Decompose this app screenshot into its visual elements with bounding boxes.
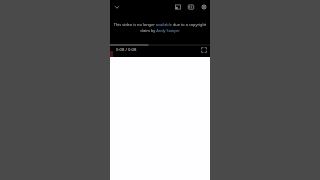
button[interactable]: Cast to device [173, 2, 182, 11]
button[interactable]: Minimise player [112, 2, 121, 11]
button[interactable]: Seek bar [110, 44, 210, 46]
button[interactable]: Settings [199, 2, 208, 11]
staticText: 0:08 / 0:08 [116, 47, 137, 53]
button[interactable]: Video player [110, 0, 210, 57]
button[interactable]: Subtitles [186, 2, 195, 11]
staticText: This video is no longer available due to… [112, 22, 208, 33]
button[interactable]: Fullscreen [200, 46, 207, 53]
